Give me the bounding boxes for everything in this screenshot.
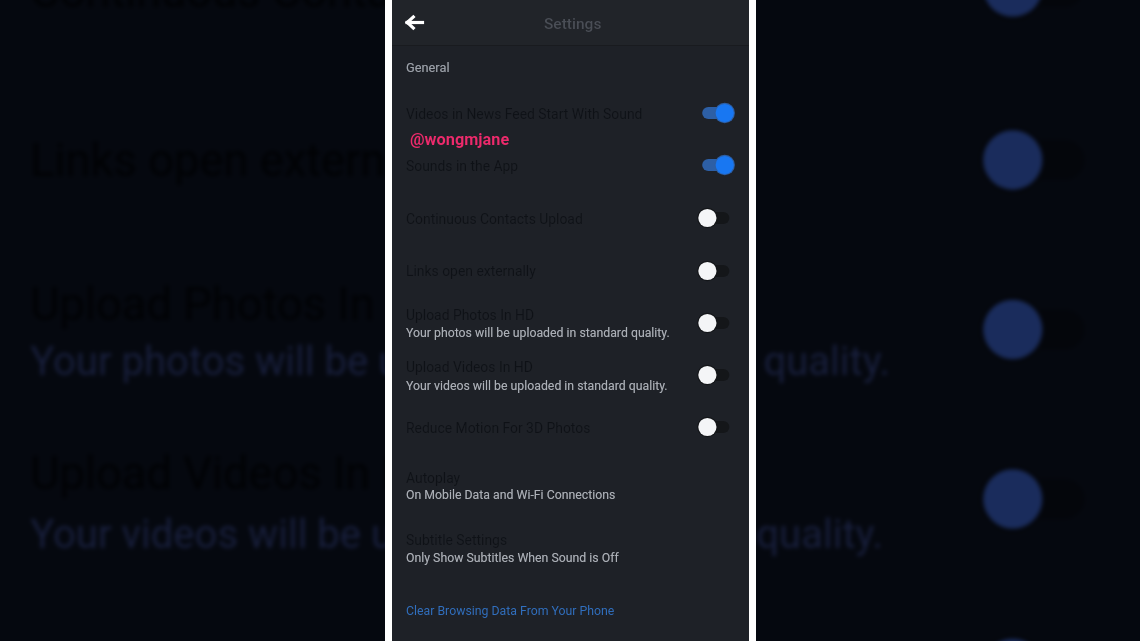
button[interactable]: Switch off (694, 412, 738, 442)
button[interactable]: Switch off (969, 450, 1112, 548)
staticText: Sounds in the App (406, 158, 519, 174)
button[interactable]: Switch on (694, 150, 738, 180)
staticText: Reduce Motion For 3D Photos (406, 420, 591, 436)
button[interactable] (391, 146, 749, 186)
staticText: Clear Browsing Data From Your Phone (406, 604, 615, 618)
staticText: Links open externally (30, 134, 454, 186)
staticText: Upload Videos In HD (30, 447, 444, 499)
staticText: Your photos will be uploaded in standard… (30, 339, 891, 385)
staticText: Upload Photos In HD (406, 307, 535, 323)
button[interactable]: Switch on (694, 98, 738, 128)
button[interactable] (391, 300, 749, 348)
button[interactable]: Switch off (969, 111, 1112, 209)
staticText: Your photos will be uploaded in standard… (406, 326, 670, 340)
staticText: On Mobile Data and Wi-Fi Connections (406, 488, 616, 502)
button[interactable]: Back (398, 6, 431, 39)
button[interactable]: Switch off (969, 0, 1112, 36)
button[interactable] (391, 462, 749, 510)
staticText: Upload Videos In HD (406, 359, 533, 375)
staticText: Settings (544, 15, 602, 33)
button[interactable]: Switch off (694, 256, 738, 286)
button[interactable] (391, 352, 749, 400)
button[interactable] (391, 408, 749, 448)
staticText: Upload Photos In HD (30, 277, 451, 329)
button[interactable]: Switch off (694, 308, 738, 338)
staticText: @wongmjane (410, 130, 510, 149)
staticText: Only Show Subtitles When Sound is Off (406, 551, 619, 565)
staticText: Your videos will be uploaded in standard… (406, 379, 668, 393)
button[interactable]: Switch off (969, 620, 1112, 641)
staticText: Links open externally (406, 263, 536, 279)
button[interactable] (391, 595, 749, 627)
staticText: Videos in News Feed Start With Sound (406, 106, 643, 122)
button[interactable] (391, 199, 749, 239)
button[interactable]: Switch off (694, 360, 738, 390)
button[interactable] (391, 251, 749, 291)
staticText: Continuous Contacts Upload (30, 0, 607, 16)
staticText: Autoplay (406, 470, 461, 486)
button[interactable]: Switch off (969, 281, 1112, 378)
staticText: Your videos will be uploaded in standard… (30, 512, 884, 558)
staticText: Subtitle Settings (406, 532, 508, 548)
button[interactable]: Switch off (694, 203, 738, 233)
button[interactable] (391, 94, 749, 134)
button[interactable] (391, 525, 749, 573)
staticText: Continuous Contacts Upload (406, 211, 583, 227)
staticText: General (406, 60, 450, 75)
